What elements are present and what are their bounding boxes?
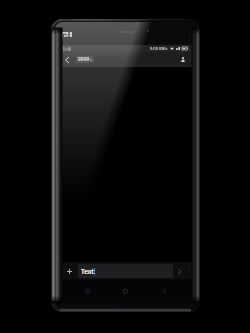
staticText: 9999	[78, 56, 90, 63]
button[interactable]: Choose contact	[177, 54, 188, 65]
staticText: 0.00 KB/s	[150, 46, 168, 51]
button[interactable]: Menu	[79, 279, 95, 303]
staticText: 11:46	[60, 46, 72, 52]
button[interactable]: Send	[174, 266, 185, 277]
staticText: Text	[81, 267, 94, 275]
button[interactable]: Add attachment	[63, 262, 75, 280]
button[interactable]: Navigate up	[61, 52, 73, 67]
button[interactable]: 9999	[76, 56, 94, 63]
button[interactable]: Text	[78, 264, 173, 278]
button[interactable]: Home	[117, 279, 133, 303]
